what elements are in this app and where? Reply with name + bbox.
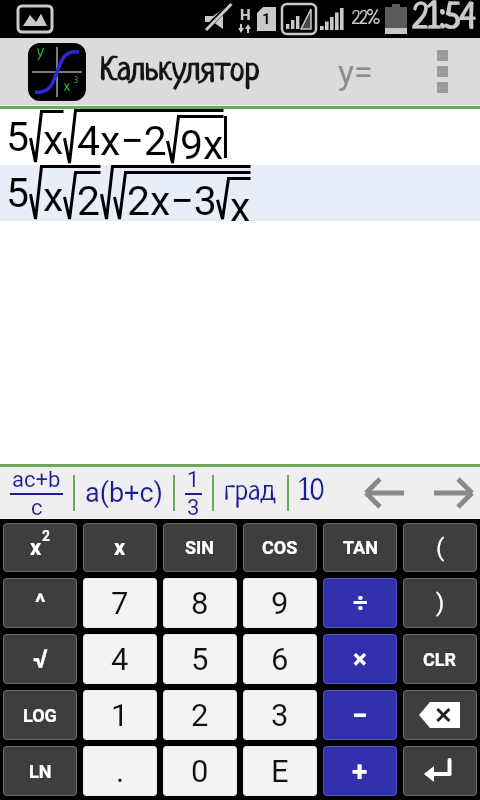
staticText: y= bbox=[338, 52, 373, 92]
staticText: 1 bbox=[111, 697, 129, 733]
button[interactable]: SIN bbox=[163, 523, 237, 572]
staticText: 2 bbox=[42, 528, 51, 544]
staticText: 7 bbox=[111, 585, 129, 621]
button[interactable] bbox=[403, 690, 477, 740]
staticText: x bbox=[64, 79, 70, 96]
button[interactable]: − bbox=[323, 690, 397, 740]
button[interactable]: 5 bbox=[0, 109, 480, 165]
button[interactable] bbox=[423, 44, 462, 99]
staticText: 21:54 bbox=[413, 0, 476, 38]
button[interactable]: y bbox=[28, 43, 86, 101]
staticText: 3 bbox=[187, 495, 200, 519]
button[interactable]: E bbox=[243, 746, 317, 796]
staticText: y bbox=[37, 44, 44, 61]
staticText: c bbox=[31, 495, 43, 519]
button[interactable]: 3 bbox=[243, 690, 317, 740]
button[interactable]: 10 bbox=[299, 477, 325, 509]
button[interactable]: TAN bbox=[323, 523, 397, 572]
staticText: 22% bbox=[352, 9, 380, 29]
staticText: TAN bbox=[343, 537, 378, 558]
button[interactable]: 4 bbox=[83, 634, 157, 684]
staticText: 10 bbox=[299, 477, 325, 509]
button[interactable]: y= bbox=[328, 44, 383, 100]
button[interactable]: √ bbox=[3, 634, 77, 684]
button[interactable] bbox=[364, 476, 408, 510]
button[interactable]: ) bbox=[403, 578, 477, 628]
button[interactable] bbox=[430, 476, 474, 510]
staticText: E bbox=[271, 753, 289, 789]
staticText: ( bbox=[436, 534, 445, 562]
staticText: × bbox=[353, 644, 367, 674]
staticText: 2x−3 bbox=[127, 177, 217, 221]
staticText: 2 bbox=[77, 177, 101, 221]
staticText: ^ bbox=[35, 589, 46, 617]
button[interactable] bbox=[403, 746, 477, 796]
staticText: 9x bbox=[180, 121, 224, 165]
staticText: x bbox=[43, 116, 64, 164]
staticText: 4 bbox=[111, 641, 129, 677]
button[interactable]: ac+b bbox=[10, 467, 63, 519]
button[interactable]: ^ bbox=[3, 578, 77, 628]
staticText: H bbox=[240, 6, 251, 24]
button[interactable]: ÷ bbox=[323, 578, 397, 628]
staticText: Калькулятор bbox=[100, 54, 260, 90]
staticText: x bbox=[30, 535, 42, 561]
staticText: SIN bbox=[185, 537, 215, 558]
staticText: 5 bbox=[191, 641, 209, 677]
staticText: ÷ bbox=[353, 588, 368, 618]
staticText: . bbox=[116, 753, 125, 789]
staticText: 0 bbox=[191, 753, 209, 789]
staticText: a(b+c) bbox=[85, 477, 163, 509]
staticText: √ bbox=[33, 644, 48, 674]
button[interactable]: 0 bbox=[163, 746, 237, 796]
button[interactable]: x bbox=[3, 523, 77, 572]
button[interactable]: CLR bbox=[403, 634, 477, 684]
staticText: 1 bbox=[262, 10, 271, 28]
staticText: 5 bbox=[6, 113, 30, 161]
button[interactable]: 9 bbox=[243, 578, 317, 628]
staticText: x bbox=[43, 173, 64, 221]
button[interactable]: ( bbox=[403, 523, 477, 572]
staticText: 3 bbox=[271, 697, 289, 733]
button[interactable]: COS bbox=[243, 523, 317, 572]
button[interactable]: 5 bbox=[0, 165, 480, 221]
staticText: − bbox=[352, 699, 368, 732]
button[interactable]: 6 bbox=[243, 634, 317, 684]
staticText: x bbox=[114, 535, 126, 561]
staticText: 8 bbox=[191, 585, 209, 621]
staticText: ac+b bbox=[12, 467, 61, 493]
staticText: LOG bbox=[23, 705, 57, 726]
staticText: град bbox=[224, 477, 277, 509]
button[interactable]: LOG bbox=[3, 690, 77, 740]
staticText: 4x−2 bbox=[77, 117, 167, 165]
staticText: 2 bbox=[191, 697, 209, 733]
staticText: + bbox=[352, 755, 368, 788]
staticText: COS bbox=[262, 537, 298, 558]
staticText: 3 bbox=[74, 75, 79, 86]
button[interactable]: . bbox=[83, 746, 157, 796]
staticText: x bbox=[230, 183, 251, 221]
button[interactable]: 5 bbox=[163, 634, 237, 684]
staticText: 9 bbox=[271, 585, 289, 621]
button[interactable]: a(b+c) bbox=[85, 477, 163, 509]
button[interactable]: 7 bbox=[83, 578, 157, 628]
staticText: 5 bbox=[6, 169, 30, 217]
button[interactable]: LN bbox=[3, 746, 77, 796]
button[interactable]: 8 bbox=[163, 578, 237, 628]
button[interactable]: x bbox=[83, 523, 157, 572]
button[interactable]: град bbox=[224, 477, 277, 509]
button[interactable]: 2 bbox=[163, 690, 237, 740]
button[interactable]: + bbox=[323, 746, 397, 796]
button[interactable]: 1 bbox=[83, 690, 157, 740]
staticText: 6 bbox=[271, 641, 289, 677]
button[interactable]: × bbox=[323, 634, 397, 684]
staticText: LN bbox=[29, 761, 52, 782]
staticText: 1 bbox=[187, 467, 200, 493]
button[interactable]: 1 bbox=[185, 467, 202, 519]
staticText: CLR bbox=[423, 649, 457, 670]
staticText: ) bbox=[436, 589, 445, 617]
